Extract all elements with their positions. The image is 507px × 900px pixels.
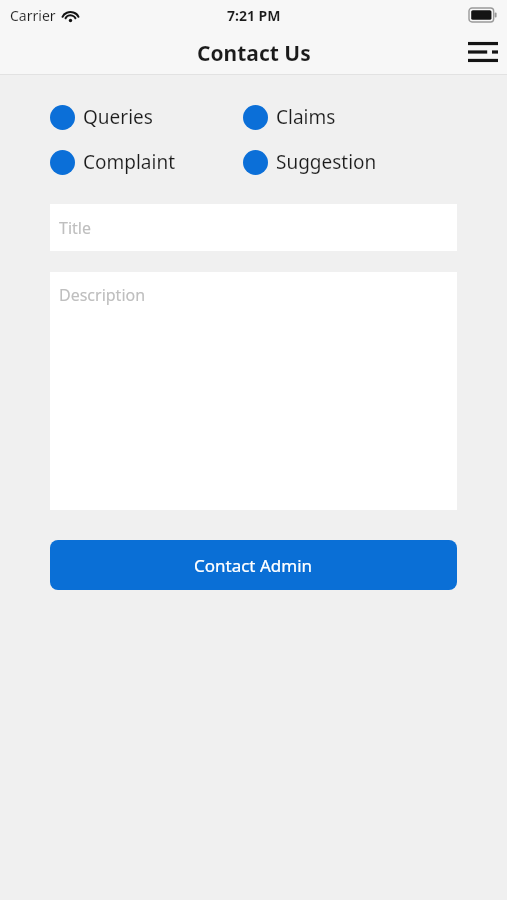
staticText: Contact Admin bbox=[194, 554, 313, 577]
staticText: Description bbox=[59, 284, 146, 306]
button[interactable]: Claims bbox=[243, 102, 336, 132]
staticText: Claims bbox=[276, 104, 336, 130]
button[interactable]: Title bbox=[50, 204, 457, 251]
button[interactable]: Menu bbox=[459, 30, 507, 74]
button[interactable]: Description bbox=[50, 272, 457, 510]
staticText: Title bbox=[59, 217, 91, 239]
staticText: Complaint bbox=[83, 149, 176, 175]
staticText: 7:21 PM bbox=[227, 6, 281, 25]
button[interactable]: Complaint bbox=[50, 147, 243, 177]
button[interactable]: Contact Admin bbox=[50, 540, 457, 590]
staticText: Suggestion bbox=[276, 149, 377, 175]
staticText: Contact Us bbox=[197, 39, 311, 68]
button[interactable]: Suggestion bbox=[243, 147, 377, 177]
button[interactable]: Queries bbox=[50, 102, 243, 132]
staticText: Queries bbox=[83, 104, 153, 130]
staticText: Carrier bbox=[10, 6, 56, 25]
